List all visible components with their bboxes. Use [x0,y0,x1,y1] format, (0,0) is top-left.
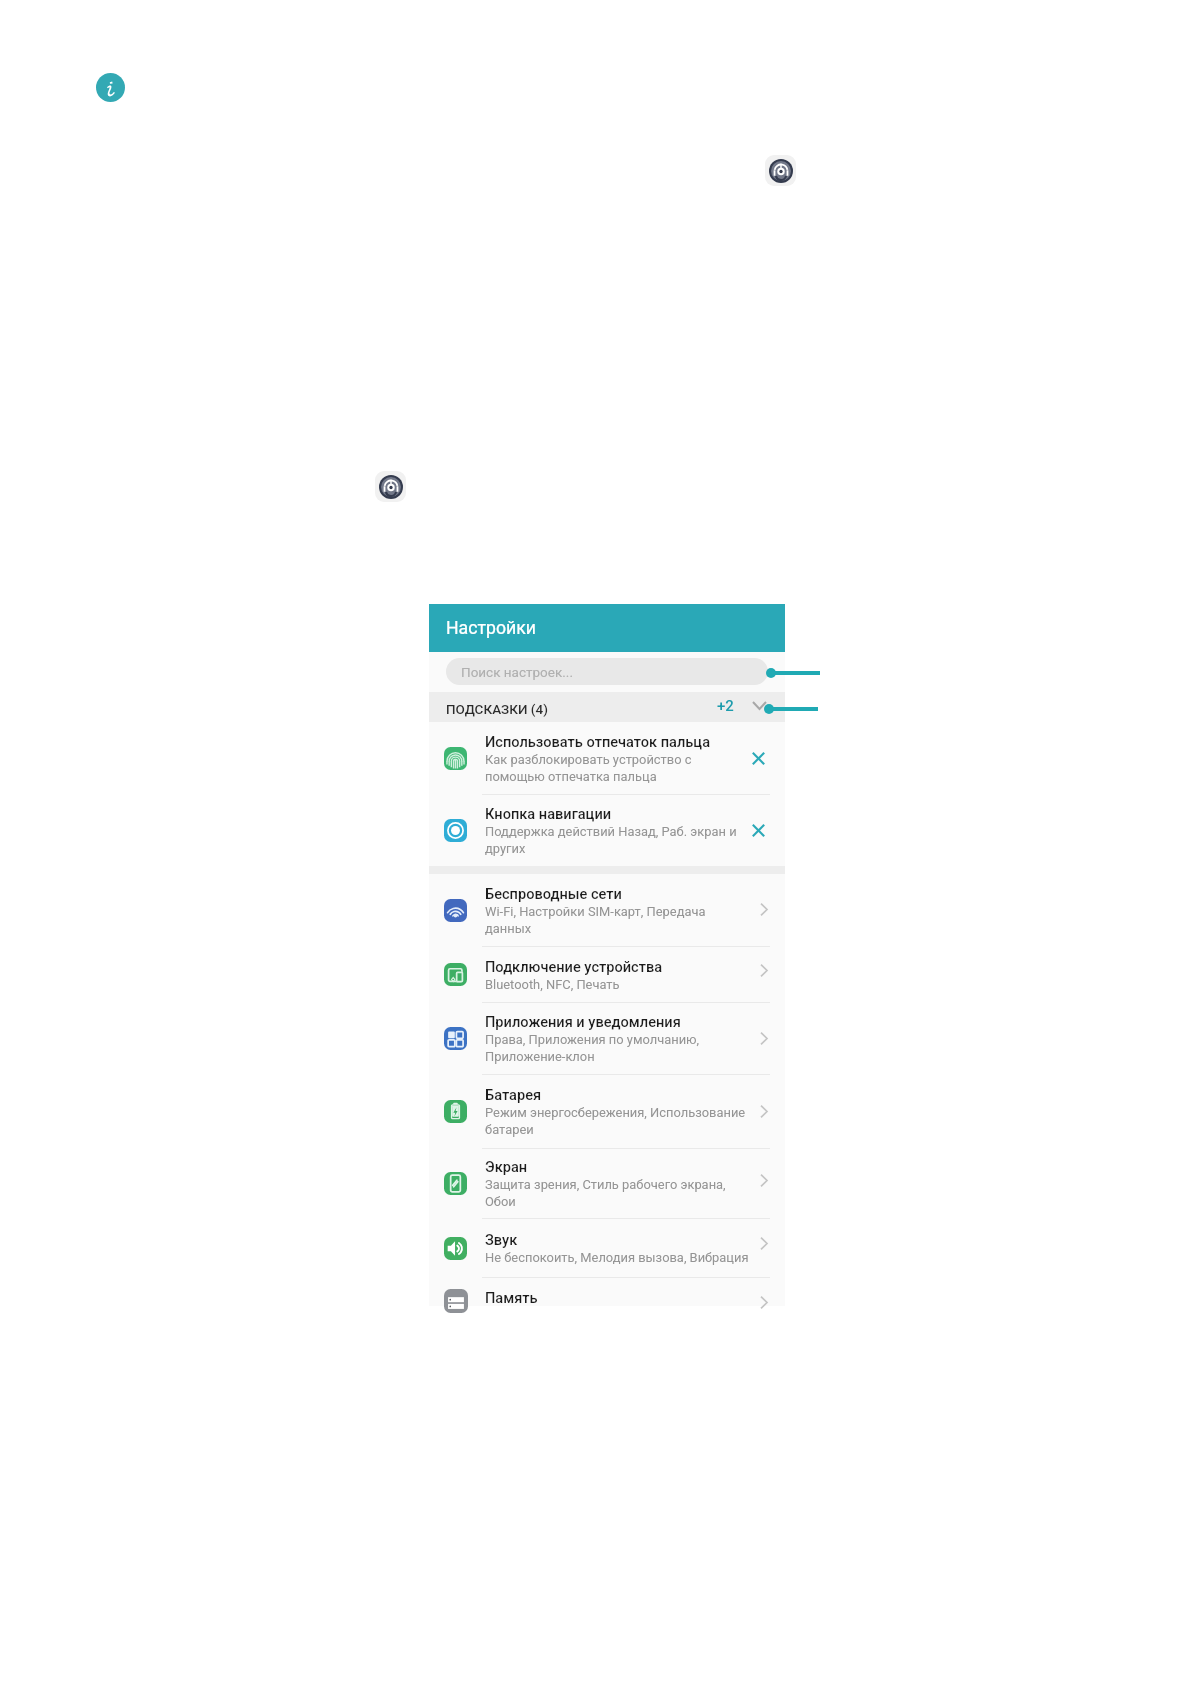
staticText: Экран [485,1157,528,1176]
staticText: Режим энергосбережения, Использование ба… [485,1104,746,1138]
button[interactable]: Dismiss [731,722,785,794]
staticText: Подключение устройства [485,957,663,976]
staticText: Wi-Fi, Настройки SIM-карт, Передача данн… [485,903,706,937]
button[interactable]: Беспроводные сети [429,874,785,946]
staticText: Поиск настроек... [461,664,573,680]
button[interactable]: Подключение устройства [429,947,785,1002]
staticText: Использовать отпечаток пальца [485,732,711,751]
button[interactable]: Приложения и уведомления [429,1003,785,1074]
staticText: Поддержка действий Назад, Раб. экран и д… [485,823,737,857]
button[interactable]: Батарея [429,1075,785,1148]
staticText: Звук [485,1230,518,1249]
staticText: Память [485,1288,538,1307]
staticText: Батарея [485,1085,542,1104]
staticText: Настройки [446,618,537,639]
staticText: Не беспокоить, Мелодия вызова, Вибрация [485,1249,749,1266]
staticText: Bluetooth, NFC, Печать [485,976,620,993]
button[interactable]: Settings [375,471,406,502]
button[interactable]: Dismiss [731,795,785,866]
button[interactable]: Кнопка навигации [429,795,785,866]
button[interactable]: Экран [429,1149,785,1218]
staticText: +2 [717,697,734,715]
staticText: Защита зрения, Стиль рабочего экрана, Об… [485,1176,726,1210]
staticText: Как разблокировать устройство с помощью … [485,751,692,785]
button[interactable]: ПОДСКАЗКИ (4) [429,692,785,722]
button[interactable]: Звук [429,1219,785,1277]
button[interactable]: Поиск настроек... [446,658,768,685]
staticText: Права, Приложения по умолчанию, Приложен… [485,1031,700,1065]
staticText: Приложения и уведомления [485,1012,681,1031]
staticText: Беспроводные сети [485,884,622,903]
button[interactable]: Info [96,73,125,102]
staticText: ПОДСКАЗКИ (4) [446,701,548,717]
button[interactable]: Использовать отпечаток пальца [429,722,785,794]
button[interactable]: Settings [765,155,796,186]
staticText: Кнопка навигации [485,804,612,823]
button[interactable]: Память [429,1278,785,1306]
